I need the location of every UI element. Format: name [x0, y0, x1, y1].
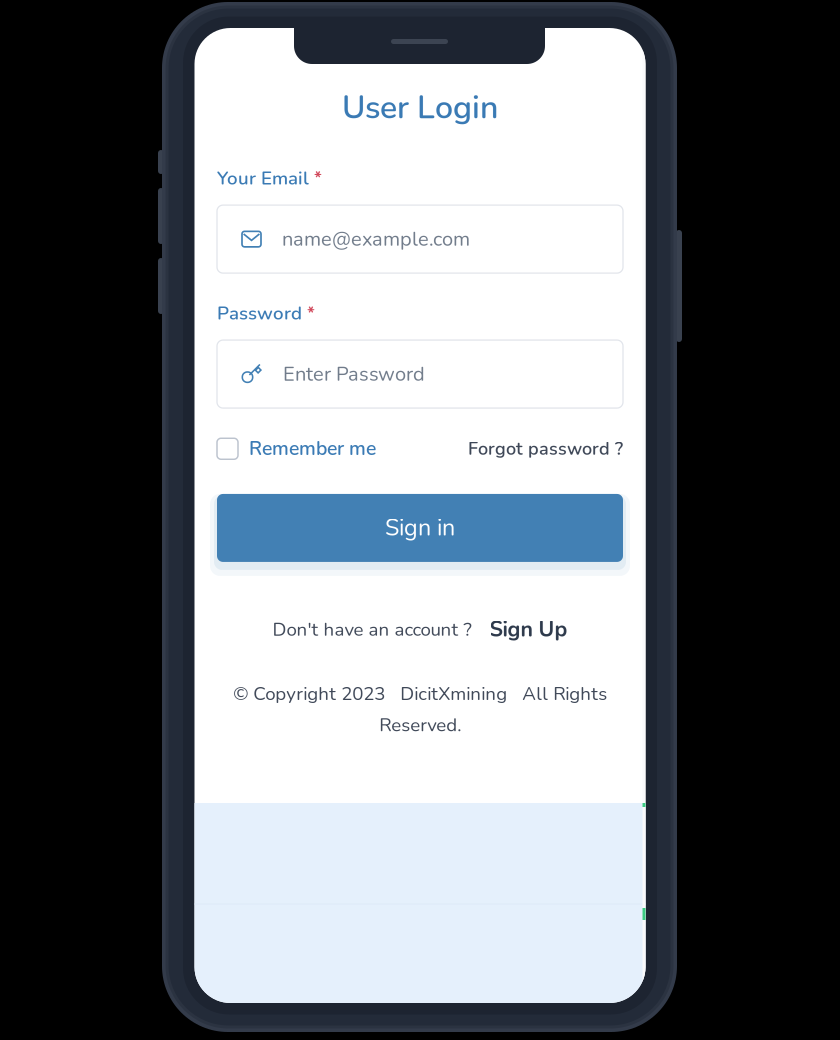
- staticText: *: [302, 302, 315, 325]
- staticText: Don't have an account ?: [272, 617, 471, 642]
- staticText: *: [309, 167, 322, 190]
- staticText: User Login: [342, 86, 498, 130]
- staticText: Your Email: [217, 166, 309, 191]
- button[interactable]: Remember me: [217, 436, 376, 462]
- staticText: Forgot password ?: [468, 436, 623, 461]
- staticText: name@example.com: [282, 225, 470, 253]
- button[interactable]: Sign Up: [471, 615, 567, 644]
- staticText: © Copyright 2023 DicitXmining All Rights…: [233, 681, 607, 738]
- staticText: Password: [217, 301, 302, 326]
- button[interactable]: Sign in: [210, 487, 630, 569]
- button[interactable]: Forgot password ?: [468, 436, 623, 461]
- staticText: Enter Password: [283, 360, 425, 388]
- staticText: Sign Up: [489, 615, 567, 644]
- staticText: Sign in: [385, 512, 455, 544]
- staticText: Remember me: [249, 436, 376, 462]
